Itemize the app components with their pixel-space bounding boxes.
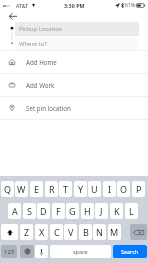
staticText: Where to? — [19, 40, 47, 48]
staticText: I — [108, 183, 112, 195]
button[interactable]: S — [23, 203, 36, 219]
staticText: Add Work — [26, 81, 55, 89]
button[interactable]: P — [132, 181, 145, 197]
button[interactable]: F — [52, 203, 65, 219]
staticText: M — [110, 226, 119, 238]
staticText: 61% — [125, 2, 135, 9]
button[interactable]: L — [125, 203, 138, 219]
staticText: Pickup Location — [19, 25, 63, 33]
staticText: B — [83, 226, 89, 238]
staticText: O — [120, 183, 128, 195]
button[interactable]: space — [50, 245, 111, 258]
staticText: Z — [24, 226, 30, 238]
staticText: X — [39, 226, 45, 238]
button[interactable]: X — [35, 224, 48, 240]
staticText: E — [34, 183, 40, 195]
staticText: Q — [4, 183, 12, 195]
button[interactable]: R — [45, 181, 58, 197]
button[interactable]: V — [64, 224, 77, 240]
button[interactable]: Next keyboard — [20, 245, 34, 258]
button[interactable]: N — [93, 224, 106, 240]
staticText: U — [91, 183, 98, 195]
staticText: R — [49, 183, 55, 195]
button[interactable]: Q — [1, 181, 14, 197]
staticText: A — [12, 205, 18, 217]
staticText: 123 — [4, 248, 15, 256]
button[interactable]: U — [88, 181, 101, 197]
button[interactable]: M — [108, 224, 121, 240]
staticText: AT&T — [16, 2, 29, 9]
staticText: D — [40, 205, 47, 217]
button[interactable]: D — [37, 203, 50, 219]
button[interactable]: Pickup Location — [15, 22, 139, 36]
staticText: T — [63, 183, 69, 195]
staticText: K — [114, 205, 120, 217]
button[interactable]: Z — [20, 224, 33, 240]
staticText: 3:30 PM — [64, 2, 85, 9]
button[interactable]: Add Home — [0, 51, 148, 73]
staticText: L — [129, 205, 134, 217]
button[interactable]: O — [117, 181, 130, 197]
staticText: S — [27, 205, 32, 217]
button[interactable]: C — [50, 224, 63, 240]
staticText: Set pin location — [26, 104, 71, 112]
staticText: C — [54, 226, 60, 238]
button[interactable]: K — [110, 203, 123, 219]
button[interactable]: E — [30, 181, 43, 197]
button[interactable]: 123 — [1, 245, 17, 258]
staticText: N — [96, 226, 103, 238]
button[interactable]: Search — [113, 245, 147, 258]
staticText: Search — [121, 248, 139, 255]
staticText: W — [17, 183, 26, 195]
button[interactable]: G — [66, 203, 79, 219]
staticText: F — [56, 205, 61, 217]
button[interactable]: Y — [74, 181, 87, 197]
button[interactable]: H — [81, 203, 94, 219]
button[interactable]: Back — [8, 11, 18, 21]
button[interactable]: B — [79, 224, 92, 240]
staticText: V — [68, 226, 74, 238]
staticText: G — [69, 205, 76, 217]
staticText: Add Home — [26, 58, 57, 66]
button[interactable]: A — [8, 203, 21, 219]
button[interactable]: Dictate — [35, 245, 48, 258]
button[interactable]: J — [95, 203, 108, 219]
staticText: J — [100, 205, 103, 217]
button[interactable]: W — [15, 181, 28, 197]
button[interactable]: T — [59, 181, 72, 197]
button[interactable]: Add Work — [0, 74, 148, 96]
button[interactable]: Where to? — [15, 37, 139, 50]
button[interactable]: Shift — [1, 224, 18, 240]
button[interactable]: I — [103, 181, 116, 197]
staticText: P — [136, 183, 142, 195]
staticText: space — [73, 248, 88, 255]
button[interactable]: Set pin location — [0, 97, 148, 119]
staticText: H — [84, 205, 91, 217]
staticText: Y — [78, 183, 84, 195]
button[interactable]: Backspace — [130, 224, 147, 240]
